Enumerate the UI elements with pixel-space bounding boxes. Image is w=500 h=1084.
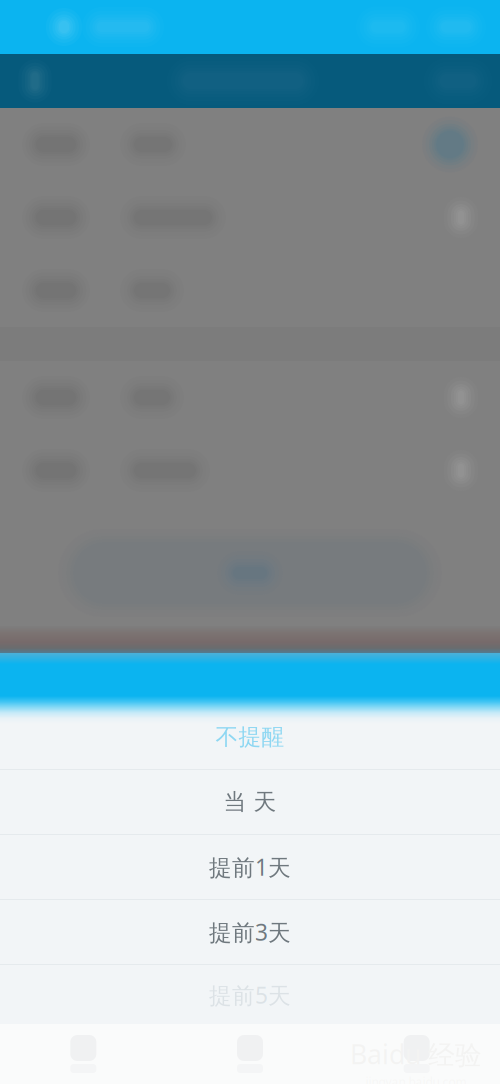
staticText: 提前3天	[209, 917, 291, 947]
staticText: Baidu 经验	[350, 1036, 482, 1072]
button[interactable]: 不提醒	[0, 705, 500, 769]
button[interactable]: 我的	[333, 1024, 500, 1084]
staticText: 提前1天	[209, 852, 291, 882]
button[interactable]: 提前3天	[0, 900, 500, 964]
staticText: 当 天	[223, 788, 276, 816]
staticText: 不提醒	[215, 723, 284, 751]
button[interactable]: 完成	[416, 54, 500, 108]
button[interactable]	[0, 181, 500, 254]
button[interactable]	[0, 108, 500, 181]
button[interactable]: 保存	[0, 529, 500, 617]
button[interactable]: 返回	[0, 54, 70, 108]
button[interactable]: 当 天	[0, 770, 500, 834]
staticText: 提前5天	[209, 980, 291, 1010]
button[interactable]: 提前1天	[0, 835, 500, 899]
button[interactable]	[0, 434, 500, 507]
